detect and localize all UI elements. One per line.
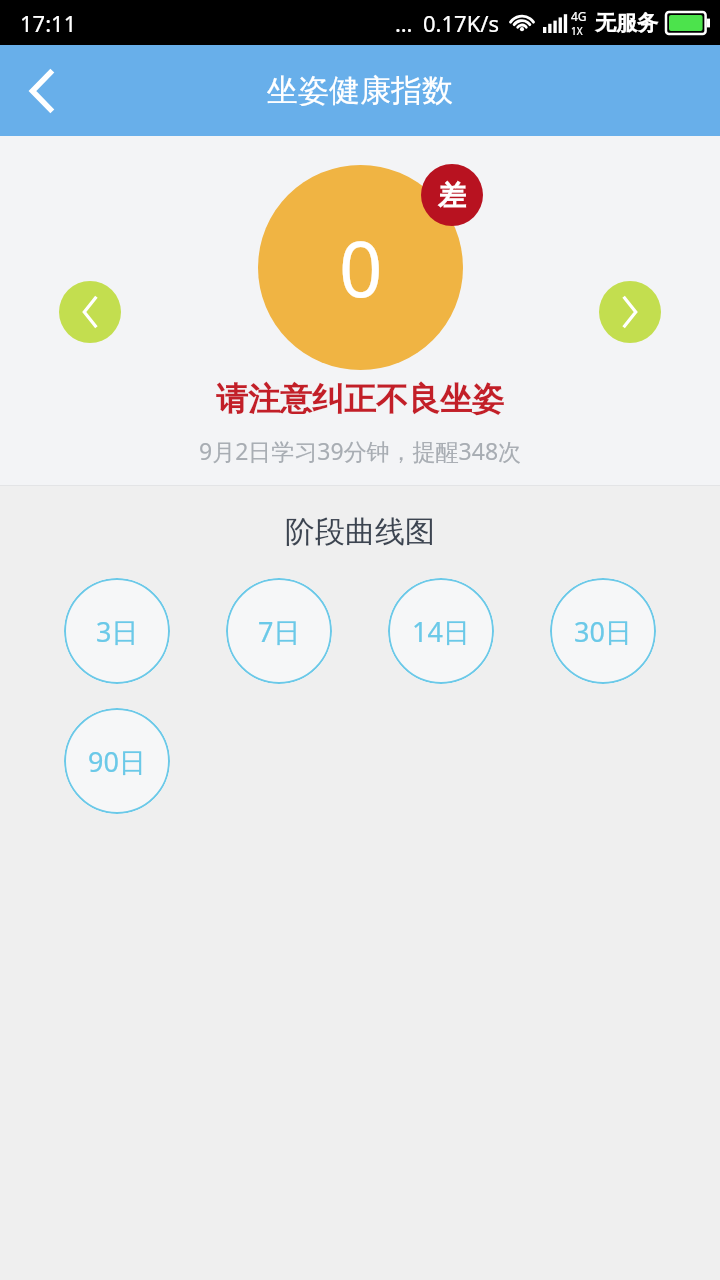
staticText: …: [395, 8, 413, 38]
staticText: 0: [339, 216, 383, 320]
staticText: 坐姿健康指数: [267, 71, 453, 110]
button[interactable]: Previous day: [59, 281, 121, 343]
staticText: 请注意纠正不良坐姿: [216, 379, 504, 419]
staticText: 3日: [96, 613, 139, 650]
button[interactable]: 30日: [550, 578, 656, 684]
staticText: 1X: [571, 24, 583, 38]
staticText: 17:11: [20, 8, 77, 38]
button[interactable]: 3日: [64, 578, 170, 684]
button[interactable]: 14日: [388, 578, 494, 684]
staticText: 阶段曲线图: [0, 513, 720, 551]
button[interactable]: Next day: [599, 281, 661, 343]
button[interactable]: Back: [0, 49, 84, 133]
staticText: 7日: [258, 613, 301, 650]
staticText: 0.17K/s: [423, 8, 499, 38]
staticText: 差: [438, 178, 466, 213]
button[interactable]: 0: [258, 165, 463, 370]
staticText: 90日: [88, 743, 146, 780]
staticText: 4G: [571, 8, 587, 24]
staticText: 14日: [412, 613, 470, 650]
staticText: 无服务: [595, 10, 658, 36]
button[interactable]: 90日: [64, 708, 170, 814]
button[interactable]: 7日: [226, 578, 332, 684]
staticText: 9月2日学习39分钟，提醒348次: [199, 435, 522, 466]
staticText: 30日: [574, 613, 632, 650]
